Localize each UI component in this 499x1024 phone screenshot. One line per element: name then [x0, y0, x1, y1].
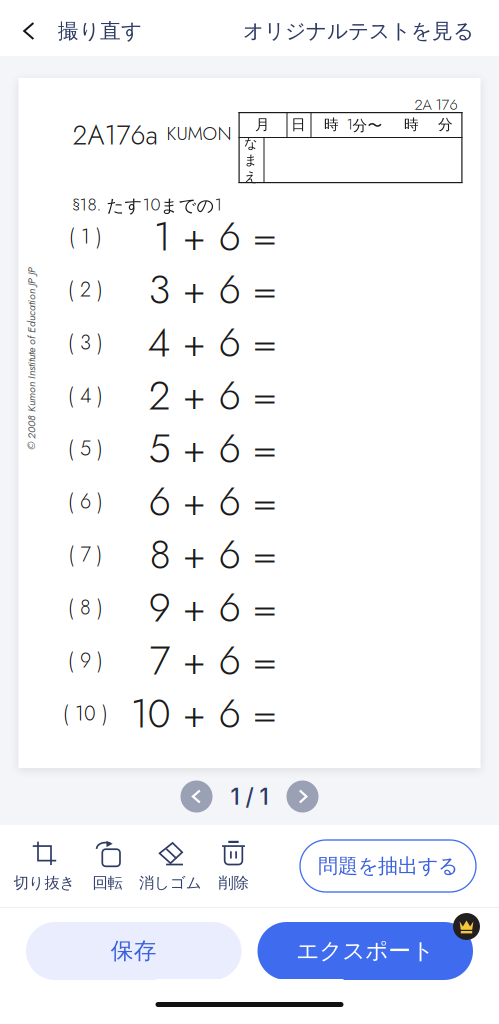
button[interactable]: エクスポート	[257, 922, 473, 980]
staticText: + 6 =	[182, 314, 277, 371]
staticText: + 6 =	[182, 473, 277, 530]
button[interactable]: 切り抜き	[13, 839, 76, 893]
button[interactable]: 削除	[202, 839, 265, 893]
staticText: © 2008 Kumon Institute of Education JP J…	[0, 336, 108, 352]
staticText: 消しゴム	[139, 873, 202, 893]
staticText: ( 2 )	[68, 275, 103, 304]
staticText: §18. たす10までの1	[72, 192, 222, 217]
staticText: 削除	[218, 873, 248, 893]
staticText: 7	[149, 632, 170, 689]
staticText: ま	[244, 152, 258, 168]
staticText: KUMON	[166, 120, 231, 147]
staticText: 9	[148, 579, 170, 636]
staticText: ( 1 )	[69, 222, 102, 251]
staticText: 4	[147, 314, 170, 371]
staticText: 時	[324, 115, 339, 134]
staticText: ( 7 )	[68, 540, 102, 569]
button[interactable]: 保存	[26, 922, 241, 980]
staticText: ( 10 )	[63, 699, 108, 728]
button[interactable]: 消しゴム	[139, 839, 202, 893]
staticText: 月	[255, 115, 270, 134]
staticText: 6	[148, 473, 170, 530]
button[interactable]: 回転	[76, 839, 139, 893]
staticText: 回転	[92, 873, 122, 893]
staticText: 2A176a	[72, 116, 157, 154]
staticText: 1	[153, 208, 170, 265]
staticText: 切り抜き	[13, 873, 75, 893]
staticText: + 6 =	[182, 208, 277, 265]
staticText: 3	[148, 261, 170, 318]
staticText: え	[244, 168, 258, 185]
staticText: エクスポート	[296, 937, 434, 965]
staticText: + 6 =	[182, 367, 277, 424]
staticText: 保存	[111, 937, 157, 965]
staticText: 時	[404, 115, 419, 134]
staticText: 2	[148, 367, 170, 424]
staticText: + 6 =	[182, 420, 277, 477]
staticText: 10	[130, 685, 170, 742]
staticText: ( 8 )	[68, 593, 103, 622]
staticText: 日	[291, 115, 306, 134]
staticText: ( 9 )	[68, 646, 103, 675]
staticText: 1分〜	[346, 114, 382, 135]
staticText: 分	[438, 115, 453, 134]
staticText: ( 6 )	[68, 487, 103, 516]
button[interactable]: オリジナルテストを見る	[243, 0, 499, 56]
staticText: 5	[148, 420, 170, 477]
button[interactable]: 撮り直す	[0, 0, 142, 56]
staticText: + 6 =	[182, 579, 277, 636]
button[interactable]: Next page	[286, 780, 318, 812]
staticText: + 6 =	[182, 261, 277, 318]
staticText: ( 5 )	[68, 434, 103, 463]
staticText: ( 3 )	[68, 328, 103, 357]
staticText: オリジナルテストを見る	[243, 18, 474, 44]
staticText: + 6 =	[182, 685, 277, 742]
staticText: 2A 176	[414, 94, 457, 115]
button[interactable]: Previous page	[180, 780, 212, 812]
staticText: + 6 =	[182, 526, 277, 583]
staticText: + 6 =	[182, 632, 277, 689]
button[interactable]: 問題を抽出する	[300, 840, 476, 892]
staticText: 8	[149, 526, 170, 583]
staticText: 撮り直す	[58, 18, 142, 44]
staticText: な	[244, 135, 258, 152]
staticText: ( 4 )	[68, 381, 103, 410]
staticText: 1 / 1	[230, 783, 268, 810]
staticText: 問題を抽出する	[318, 853, 458, 879]
